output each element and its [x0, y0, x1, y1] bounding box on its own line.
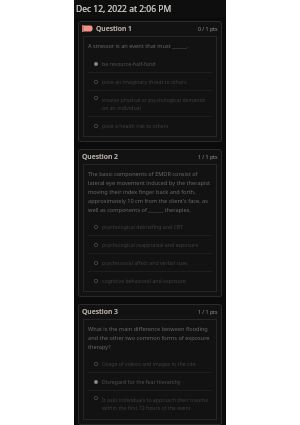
staticText: Question 1: [96, 24, 132, 33]
button[interactable]: Disregard for the fear hierarchy: [88, 376, 212, 387]
staticText: What is the main difference between floo…: [88, 325, 212, 350]
button[interactable]: Question 3: [78, 304, 222, 425]
button[interactable]: involve physical or psychological demand…: [88, 94, 212, 113]
staticText: cognitive behavioral and exposure: [102, 277, 212, 284]
button[interactable]: Flagged question: [82, 25, 93, 32]
staticText: Usage of videos and images in the site: [102, 360, 212, 367]
staticText: pose a health risk to others: [102, 122, 212, 129]
button[interactable]: psychological reappraisal and exposure: [88, 239, 212, 250]
staticText: psychological debriefing and CBT: [102, 223, 212, 230]
staticText: pose an imaginary threat to others: [102, 78, 212, 85]
button[interactable]: psychological debriefing and CBT: [88, 221, 212, 232]
button[interactable]: Flagged question: [78, 21, 222, 142]
button[interactable]: psychosocial affect and verbal cues: [88, 257, 212, 268]
staticText: involve physical or psychological demand…: [102, 96, 212, 111]
button[interactable]: be resource-half-fund: [88, 58, 212, 69]
staticText: It asks individuals to approach their tr…: [102, 396, 212, 411]
staticText: Disregard for the fear hierarchy: [102, 378, 212, 385]
button[interactable]: cognitive behavioral and exposure: [88, 275, 212, 286]
button[interactable]: pose a health risk to others: [88, 120, 212, 131]
staticText: 1 / 1 pts: [198, 153, 218, 160]
button[interactable]: It asks individuals to approach their tr…: [88, 394, 212, 413]
staticText: psychological reappraisal and exposure: [102, 241, 212, 248]
staticText: be resource-half-fund: [102, 60, 212, 67]
staticText: The basic components of EMDR consist of …: [88, 170, 212, 213]
staticText: 1 / 1 pts: [198, 308, 218, 315]
staticText: psychosocial affect and verbal cues: [102, 259, 212, 266]
staticText: Question 2: [82, 152, 118, 161]
button[interactable]: Usage of videos and images in the site: [88, 358, 212, 369]
button[interactable]: pose an imaginary threat to others: [88, 76, 212, 87]
button[interactable]: Question 2: [78, 149, 222, 297]
staticText: 0 / 1 pts: [198, 25, 218, 32]
staticText: Dec 12, 2022 at 2:06 PM: [76, 3, 172, 15]
staticText: A stressor is an event that must ______.: [88, 42, 189, 50]
staticText: Question 3: [82, 307, 118, 316]
